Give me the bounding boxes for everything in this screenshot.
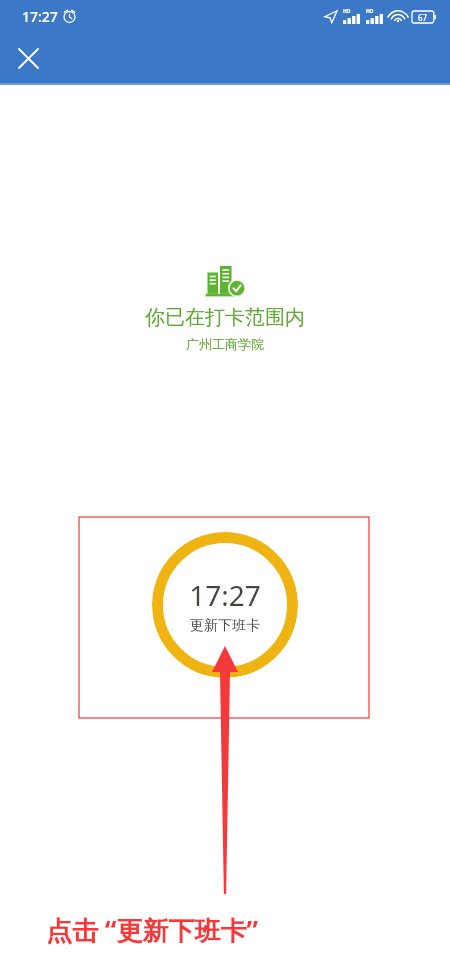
staticText: HD xyxy=(343,8,351,15)
staticText: 17:27 xyxy=(189,576,261,614)
staticText: 67 xyxy=(418,12,428,23)
staticText: 17:27 xyxy=(22,7,58,26)
button[interactable]: 17:27 xyxy=(152,532,298,678)
staticText: HD xyxy=(366,8,374,15)
staticText: 点击 “更新下班卡” xyxy=(46,912,258,948)
staticText: 广州工商学院 xyxy=(186,336,264,352)
button[interactable]: Close xyxy=(8,38,48,78)
staticText: 你已在打卡范围内 xyxy=(145,305,305,330)
staticText: 更新下班卡 xyxy=(190,617,260,635)
